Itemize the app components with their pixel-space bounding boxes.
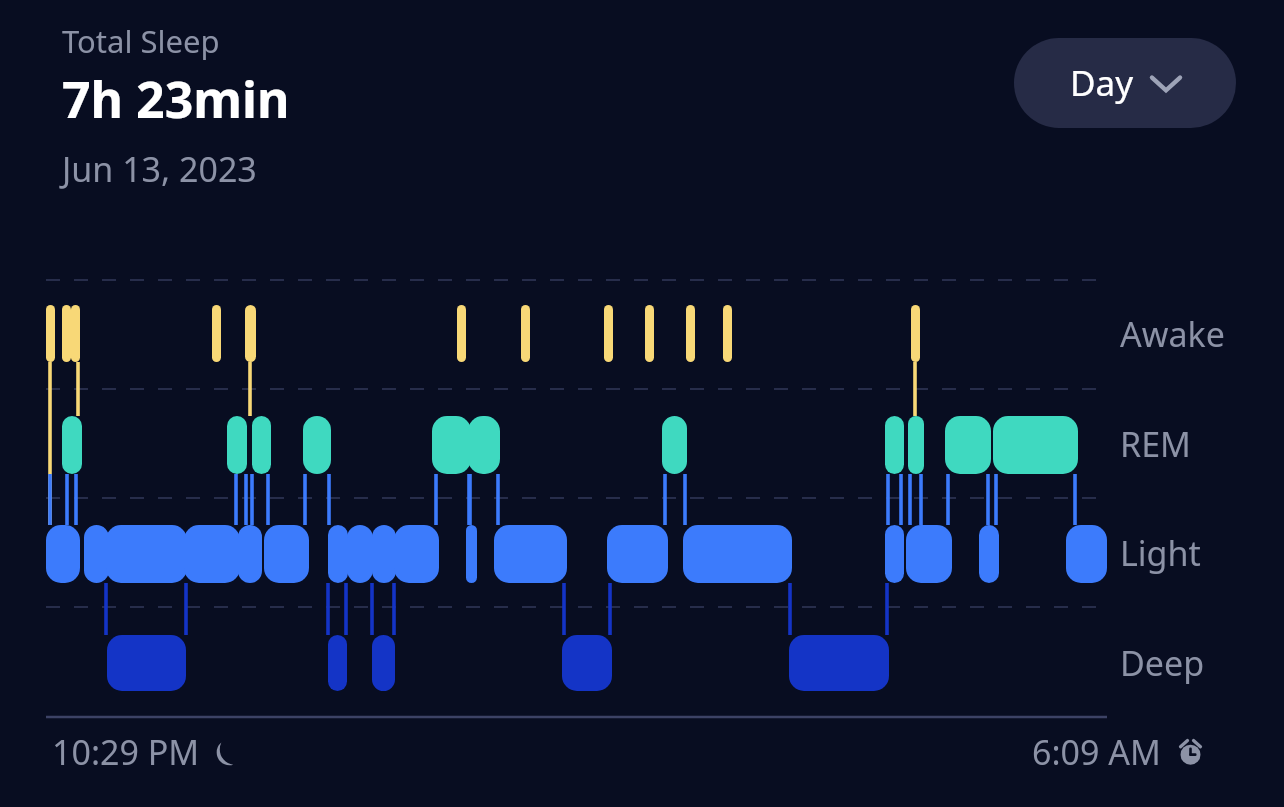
staticText: Day [1070,59,1134,107]
staticText: Total Sleep [62,20,220,62]
staticText: REM [1120,421,1191,467]
other: Bedtime [216,739,243,766]
button[interactable]: Day [1014,38,1236,128]
staticText: Light [1120,530,1201,576]
staticText: Deep [1120,640,1205,686]
staticText: Jun 13, 2023 [62,146,257,192]
staticText: 6:09 AM [1032,729,1161,775]
other: Wake alarm [1177,739,1204,766]
staticText: Awake [1120,311,1225,357]
staticText: 10:29 PM [52,729,200,775]
staticText: 7h 23min [62,65,290,133]
